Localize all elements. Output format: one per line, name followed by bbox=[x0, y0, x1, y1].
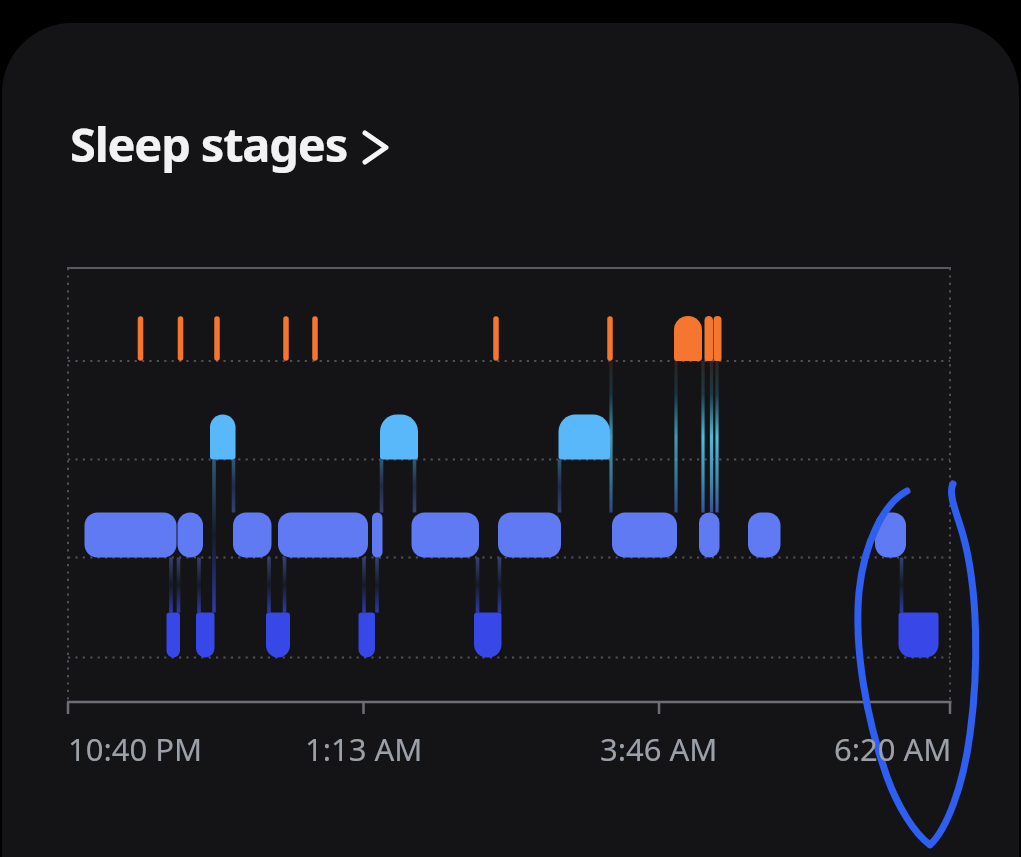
staticText: 1:13 AM bbox=[305, 728, 423, 768]
staticText: Sleep stages bbox=[70, 112, 348, 176]
button[interactable]: Sleep stages bbox=[70, 112, 400, 184]
staticText: 6:20 AM bbox=[834, 728, 952, 768]
staticText: 3:46 AM bbox=[600, 728, 718, 768]
staticText: 10:40 PM bbox=[68, 728, 203, 768]
